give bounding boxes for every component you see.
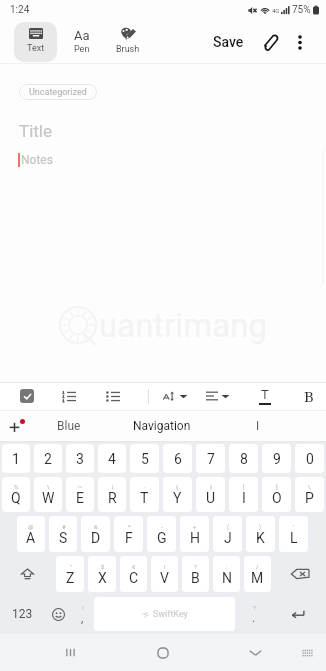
staticText: ! — [164, 563, 166, 570]
button[interactable]: More options — [286, 28, 314, 56]
staticText: ~ — [78, 483, 83, 490]
staticText: T — [140, 490, 149, 506]
button[interactable]: Font size — [161, 383, 190, 409]
staticText: J — [224, 530, 232, 546]
button[interactable]: Hide keyboard — [239, 634, 271, 671]
button[interactable]: # — [49, 516, 77, 552]
button[interactable]: [ — [229, 477, 258, 512]
staticText: ? — [253, 604, 256, 611]
button[interactable]: { — [163, 477, 192, 512]
button[interactable]: 0 — [295, 444, 324, 473]
staticText: \ — [308, 483, 311, 490]
staticText: ' — [293, 523, 295, 530]
staticText: 0 — [306, 451, 314, 467]
button[interactable]: * — [114, 516, 143, 552]
button[interactable]: Recents — [54, 634, 86, 671]
staticText: - — [161, 523, 163, 530]
button[interactable]: + — [180, 516, 209, 552]
staticText: Notes — [21, 153, 53, 167]
button[interactable]: Add clipboard item — [1, 410, 27, 442]
staticText: 8 — [240, 451, 248, 467]
staticText: N — [222, 570, 232, 586]
button[interactable]: Navigation — [115, 410, 209, 442]
button[interactable]: Space — [94, 597, 235, 631]
button[interactable]: B — [296, 383, 322, 409]
staticText: + — [193, 523, 197, 530]
staticText: K — [256, 530, 265, 546]
button[interactable]: ? — [182, 556, 209, 592]
staticText: 1:24 — [10, 4, 30, 16]
staticText: Text — [27, 43, 45, 54]
button[interactable]: ? — [237, 594, 270, 634]
staticText: H — [190, 530, 200, 546]
button[interactable]: 9 — [262, 444, 291, 473]
button[interactable]: 5 — [130, 444, 159, 473]
button[interactable]: ] — [262, 477, 291, 512]
button[interactable]: " — [56, 556, 84, 592]
staticText: U — [206, 490, 216, 506]
staticText: ( — [227, 523, 230, 530]
staticText: V — [160, 570, 169, 586]
button[interactable]: ! — [151, 556, 178, 592]
staticText: 2 — [44, 451, 52, 467]
button[interactable]: ' — [279, 516, 308, 552]
button[interactable]: Text — [14, 22, 57, 62]
button[interactable]: % — [2, 477, 30, 512]
button[interactable]: ( — [213, 516, 242, 552]
button[interactable]: Text colour — [252, 383, 278, 409]
staticText: S — [59, 530, 68, 546]
button[interactable]: Numbered list — [58, 385, 80, 407]
button[interactable]: Shift — [0, 554, 54, 594]
button[interactable]: ) — [246, 516, 275, 552]
staticText: I — [242, 490, 246, 506]
staticText: A — [26, 530, 36, 546]
button[interactable]: \ — [295, 477, 324, 512]
staticText: 3 — [76, 451, 84, 467]
staticText: : — [226, 563, 228, 570]
button[interactable]: Emoji — [45, 594, 72, 634]
button[interactable]: & — [81, 516, 110, 552]
button[interactable]: \ — [34, 477, 62, 512]
button[interactable]: 123 — [0, 594, 45, 634]
staticText: & — [94, 523, 98, 530]
button[interactable]: Save — [207, 30, 250, 54]
button[interactable]: | — [98, 477, 126, 512]
staticText: * — [128, 523, 131, 530]
staticText: Uncategorized — [29, 87, 87, 98]
button[interactable]: @ — [17, 516, 45, 552]
button[interactable]: 6 — [163, 444, 192, 473]
button[interactable]: Keyboard layout — [292, 634, 322, 671]
button[interactable]: 7 — [196, 444, 225, 473]
staticText: Brush — [116, 44, 140, 55]
button[interactable]: Bulleted list — [102, 385, 124, 407]
button[interactable]: Home — [147, 634, 179, 671]
button[interactable]: Enter — [270, 594, 326, 634]
button[interactable]: Checklist — [14, 383, 40, 409]
button[interactable]: 2 — [34, 444, 62, 473]
staticText: Save — [213, 34, 244, 50]
button[interactable]: 3 — [66, 444, 94, 473]
button[interactable]: Aa — [60, 22, 103, 62]
button[interactable]: } — [196, 477, 225, 512]
staticText: $ — [101, 563, 105, 570]
button[interactable]: ~ — [66, 477, 94, 512]
button[interactable]: 4 — [98, 444, 126, 473]
button[interactable]: · — [130, 477, 159, 512]
button[interactable]: - — [147, 516, 176, 552]
button[interactable]: Brush — [106, 22, 149, 62]
button[interactable]: Backspace — [273, 554, 326, 594]
button[interactable]: ! — [72, 594, 92, 634]
button[interactable]: Uncategorized — [19, 84, 97, 100]
button[interactable]: I — [227, 410, 288, 442]
button[interactable]: 1 — [2, 444, 30, 473]
button[interactable]: € — [120, 556, 147, 592]
button[interactable]: Attach — [256, 27, 286, 57]
button[interactable]: Blue — [38, 410, 99, 442]
button[interactable]: Alignment — [204, 383, 232, 409]
button[interactable]: / — [244, 556, 271, 592]
button[interactable]: 8 — [229, 444, 258, 473]
button[interactable]: : — [213, 556, 240, 592]
button[interactable]: $ — [88, 556, 116, 592]
staticText: X — [98, 570, 107, 586]
staticText: ! — [82, 604, 84, 611]
